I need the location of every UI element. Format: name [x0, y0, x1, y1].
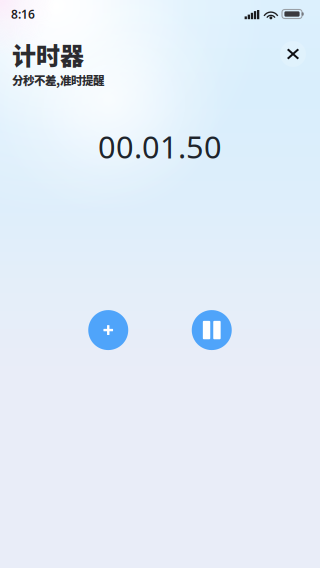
button[interactable]: Pause: [192, 310, 232, 350]
staticText: 8:16: [11, 6, 35, 22]
staticText: 00.01.50: [98, 126, 222, 167]
button[interactable]: Add time: [88, 310, 128, 350]
staticText: 分秒不差,准时提醒: [12, 72, 104, 88]
staticText: 计时器: [12, 37, 84, 72]
button[interactable]: Close: [276, 37, 310, 71]
